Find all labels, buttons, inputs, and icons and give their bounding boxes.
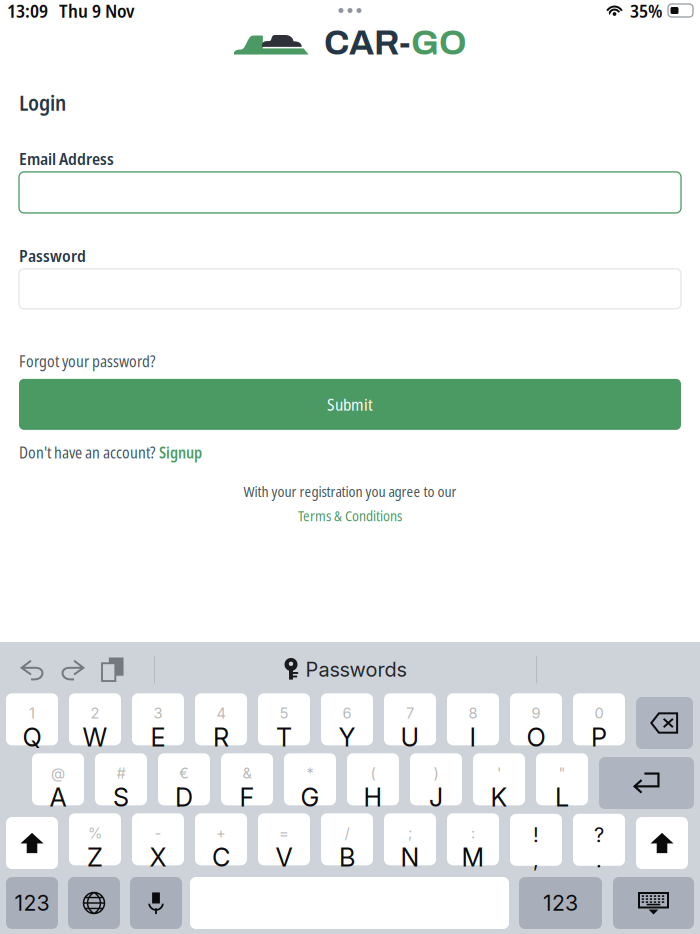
button[interactable]: 1	[6, 697, 58, 749]
staticText: 123	[543, 890, 578, 916]
staticText: &	[242, 764, 251, 782]
button[interactable]: (	[347, 757, 399, 809]
staticText: '	[497, 764, 501, 782]
button[interactable]: 3	[132, 697, 184, 749]
button[interactable]: Shift	[6, 817, 58, 869]
button[interactable]: Paste	[101, 657, 124, 681]
button[interactable]: Undo	[19, 659, 45, 680]
staticText: %	[88, 824, 102, 842]
staticText: Passwords	[305, 657, 406, 682]
button[interactable]: 5	[258, 697, 310, 749]
staticText: K	[490, 782, 507, 813]
staticText: L	[555, 782, 569, 813]
button[interactable]: &	[221, 757, 273, 809]
staticText: 9	[531, 704, 540, 722]
staticText: ?	[594, 823, 604, 847]
button[interactable]: 9	[510, 697, 562, 749]
button[interactable]: Forgot your password?	[19, 351, 155, 372]
button[interactable]: Signup	[159, 442, 202, 463]
button[interactable]: Passwords	[284, 657, 406, 682]
staticText: B	[339, 842, 355, 873]
button[interactable]: *	[284, 757, 336, 809]
staticText: Don't have an account?	[19, 442, 155, 463]
button[interactable]: Return	[599, 757, 694, 809]
staticText: W	[82, 722, 107, 753]
staticText: P	[591, 722, 607, 753]
button[interactable]: Next keyboard	[68, 877, 120, 929]
button[interactable]: ;	[384, 817, 436, 869]
staticText: ;	[408, 824, 412, 842]
button[interactable]: Delete	[636, 697, 693, 749]
staticText: C	[212, 842, 230, 873]
button[interactable]: Redo	[60, 659, 86, 680]
button[interactable]: 6	[321, 697, 373, 749]
staticText: 7	[406, 704, 414, 722]
button[interactable]: =	[258, 817, 310, 869]
staticText: A	[49, 782, 66, 813]
staticText: (	[370, 764, 375, 782]
button[interactable]: #	[95, 757, 147, 809]
button[interactable]: Dictation	[130, 877, 182, 929]
staticText: :	[471, 824, 475, 842]
staticText: -	[154, 824, 161, 842]
staticText: GO	[411, 24, 466, 62]
staticText: )	[433, 764, 438, 782]
button[interactable]: '	[473, 757, 525, 809]
staticText: R	[213, 722, 229, 753]
staticText: 0	[594, 704, 603, 722]
staticText: .	[596, 848, 602, 872]
staticText: Y	[338, 722, 355, 753]
staticText: *	[306, 764, 313, 782]
button[interactable]: Password field	[19, 269, 681, 309]
staticText: U	[400, 722, 419, 753]
staticText: D	[175, 782, 193, 813]
button[interactable]: €	[158, 757, 210, 809]
staticText: Login	[19, 88, 66, 117]
button[interactable]: 4	[195, 697, 247, 749]
staticText: Forgot your password?	[19, 351, 155, 372]
staticText: V	[275, 842, 292, 873]
button[interactable]: ?	[573, 817, 625, 869]
staticText: Terms & Conditions	[298, 506, 402, 525]
staticText: /	[344, 824, 349, 842]
staticText: 4	[216, 704, 225, 722]
staticText: 35%	[630, 0, 662, 23]
staticText: +	[216, 824, 226, 842]
button[interactable]: Email Address field	[19, 172, 681, 213]
button[interactable]: /	[321, 817, 373, 869]
staticText: ,	[533, 848, 539, 872]
button[interactable]: 7	[384, 697, 436, 749]
button[interactable]: 0	[573, 697, 625, 749]
staticText: 6	[342, 704, 351, 722]
button[interactable]: :	[447, 817, 499, 869]
button[interactable]: 8	[447, 697, 499, 749]
button[interactable]: +	[195, 817, 247, 869]
staticText: G	[300, 782, 319, 813]
button[interactable]: 2	[69, 697, 121, 749]
staticText: 1	[29, 704, 35, 722]
staticText: !	[533, 823, 539, 847]
button[interactable]: 123	[6, 877, 58, 929]
button[interactable]: @	[32, 757, 84, 809]
staticText: N	[400, 842, 419, 873]
staticText: O	[526, 722, 545, 753]
button[interactable]: "	[536, 757, 588, 809]
button[interactable]: -	[132, 817, 184, 869]
button[interactable]: 123	[519, 877, 602, 929]
button[interactable]: !	[510, 817, 562, 869]
staticText: F	[239, 782, 254, 813]
staticText: Q	[22, 722, 41, 753]
button[interactable]: Submit	[19, 379, 681, 430]
staticText: Submit	[327, 393, 373, 416]
staticText: =	[279, 824, 289, 842]
button[interactable]: Hide keyboard	[613, 877, 694, 929]
button[interactable]: Shift	[636, 817, 688, 869]
button[interactable]: )	[410, 757, 462, 809]
button[interactable]: Terms & Conditions	[298, 506, 402, 525]
staticText: J	[429, 782, 443, 813]
button[interactable]: %	[69, 817, 121, 869]
staticText: Signup	[159, 442, 202, 463]
staticText: With your registration you agree to our	[243, 482, 456, 501]
staticText: 8	[468, 704, 477, 722]
